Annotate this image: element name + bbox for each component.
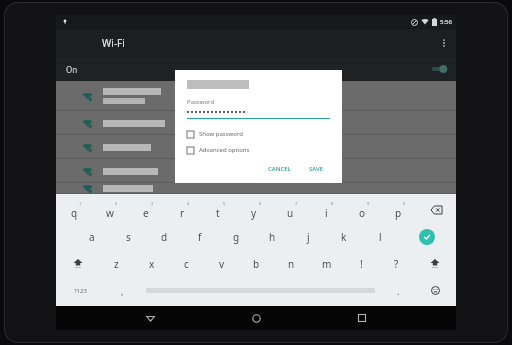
button[interactable]: 9	[344, 197, 380, 223]
button[interactable]: x	[134, 250, 169, 277]
button[interactable]: 5	[200, 197, 236, 223]
button[interactable]: Back	[138, 306, 162, 330]
staticText: 7	[295, 201, 298, 206]
staticText: q	[71, 206, 78, 220]
button[interactable]: .	[381, 277, 415, 304]
button[interactable]: a	[74, 223, 110, 250]
button[interactable]: Show password	[187, 130, 243, 138]
button[interactable]: Advanced options	[187, 146, 250, 154]
staticText: !	[360, 257, 363, 271]
staticText: 5:56	[440, 18, 452, 26]
staticText: 0	[403, 201, 406, 206]
staticText: n	[288, 257, 295, 271]
staticText: v	[219, 257, 225, 271]
button[interactable]: SAVE	[303, 162, 330, 176]
button[interactable]: Home	[244, 306, 268, 330]
button[interactable]	[56, 81, 456, 111]
button[interactable]: Shift	[414, 250, 456, 277]
staticText: g	[233, 230, 240, 244]
button[interactable]: f	[182, 223, 218, 250]
staticText: i	[325, 206, 328, 220]
staticText: Wi‑Fi	[102, 36, 125, 50]
staticText: c	[184, 257, 189, 271]
staticText: d	[161, 230, 168, 244]
staticText: 5	[223, 201, 226, 206]
button[interactable]: ?	[379, 250, 414, 277]
button[interactable]: c	[169, 250, 204, 277]
staticText: m	[322, 257, 332, 271]
staticText: 1	[79, 201, 82, 206]
button[interactable]: 8	[308, 197, 344, 223]
staticText: 8	[331, 201, 334, 206]
staticText: x	[149, 257, 155, 271]
staticText: 6	[259, 201, 262, 206]
button[interactable]: Recent apps	[350, 306, 374, 330]
button[interactable]: 1	[56, 197, 92, 223]
button[interactable]: 2	[92, 197, 128, 223]
staticText: SAVE	[309, 165, 324, 173]
staticText: ?	[394, 257, 399, 271]
button[interactable]	[56, 135, 456, 159]
staticText: e	[143, 206, 149, 220]
button[interactable]: 7	[272, 197, 308, 223]
staticText: On	[66, 64, 78, 75]
button[interactable]: !	[344, 250, 379, 277]
staticText: 2	[115, 201, 118, 206]
button[interactable]: CANCEL	[262, 162, 297, 176]
staticText: l	[379, 230, 382, 244]
staticText: t	[216, 206, 220, 220]
staticText: p	[395, 206, 402, 220]
button[interactable]: Shift	[56, 250, 99, 277]
button[interactable]: j	[290, 223, 326, 250]
button[interactable]: n	[274, 250, 309, 277]
button[interactable]: Backspace	[416, 197, 456, 223]
staticText: k	[341, 230, 347, 244]
staticText: f	[198, 230, 202, 244]
button[interactable]: Wi-Fi toggle	[430, 63, 448, 75]
button[interactable]: Space	[140, 277, 381, 304]
staticText: y	[251, 206, 257, 220]
button[interactable]: z	[99, 250, 134, 277]
staticText: b	[253, 257, 260, 271]
staticText: ?123	[74, 287, 87, 295]
staticText: 9	[367, 201, 370, 206]
button[interactable]: 4	[164, 197, 200, 223]
button[interactable]	[56, 183, 456, 194]
button[interactable]: Enter	[398, 223, 456, 250]
staticText: r	[180, 206, 185, 220]
staticText: h	[269, 230, 276, 244]
button[interactable]: v	[204, 250, 239, 277]
button[interactable]: ?123	[56, 277, 105, 304]
button[interactable]	[56, 111, 456, 135]
staticText: ,	[121, 285, 124, 297]
staticText: j	[307, 230, 310, 244]
staticText: a	[89, 230, 95, 244]
staticText: 4	[187, 201, 190, 206]
staticText: Show password	[199, 130, 243, 138]
staticText: Password	[187, 98, 215, 106]
button[interactable]: 0	[380, 197, 416, 223]
button[interactable]: d	[146, 223, 182, 250]
button[interactable]: 3	[128, 197, 164, 223]
button[interactable]: ,	[105, 277, 140, 304]
staticText: 3	[151, 201, 154, 206]
button[interactable]: Emoji	[415, 277, 456, 304]
staticText: o	[359, 206, 366, 220]
button[interactable]: k	[326, 223, 362, 250]
button[interactable]	[56, 159, 456, 183]
staticText: u	[287, 206, 294, 220]
button[interactable]: g	[218, 223, 254, 250]
button[interactable]: s	[110, 223, 146, 250]
staticText: s	[126, 230, 131, 244]
button[interactable]: 6	[236, 197, 272, 223]
button[interactable]: h	[254, 223, 290, 250]
staticText: Advanced options	[199, 146, 250, 154]
staticText: z	[114, 257, 119, 271]
button[interactable]: More options	[432, 31, 456, 55]
button[interactable]: m	[309, 250, 344, 277]
staticText: w	[106, 206, 114, 220]
staticText: CANCEL	[268, 165, 291, 173]
button[interactable]: b	[239, 250, 274, 277]
button[interactable]: l	[362, 223, 398, 250]
staticText: .	[397, 285, 400, 297]
